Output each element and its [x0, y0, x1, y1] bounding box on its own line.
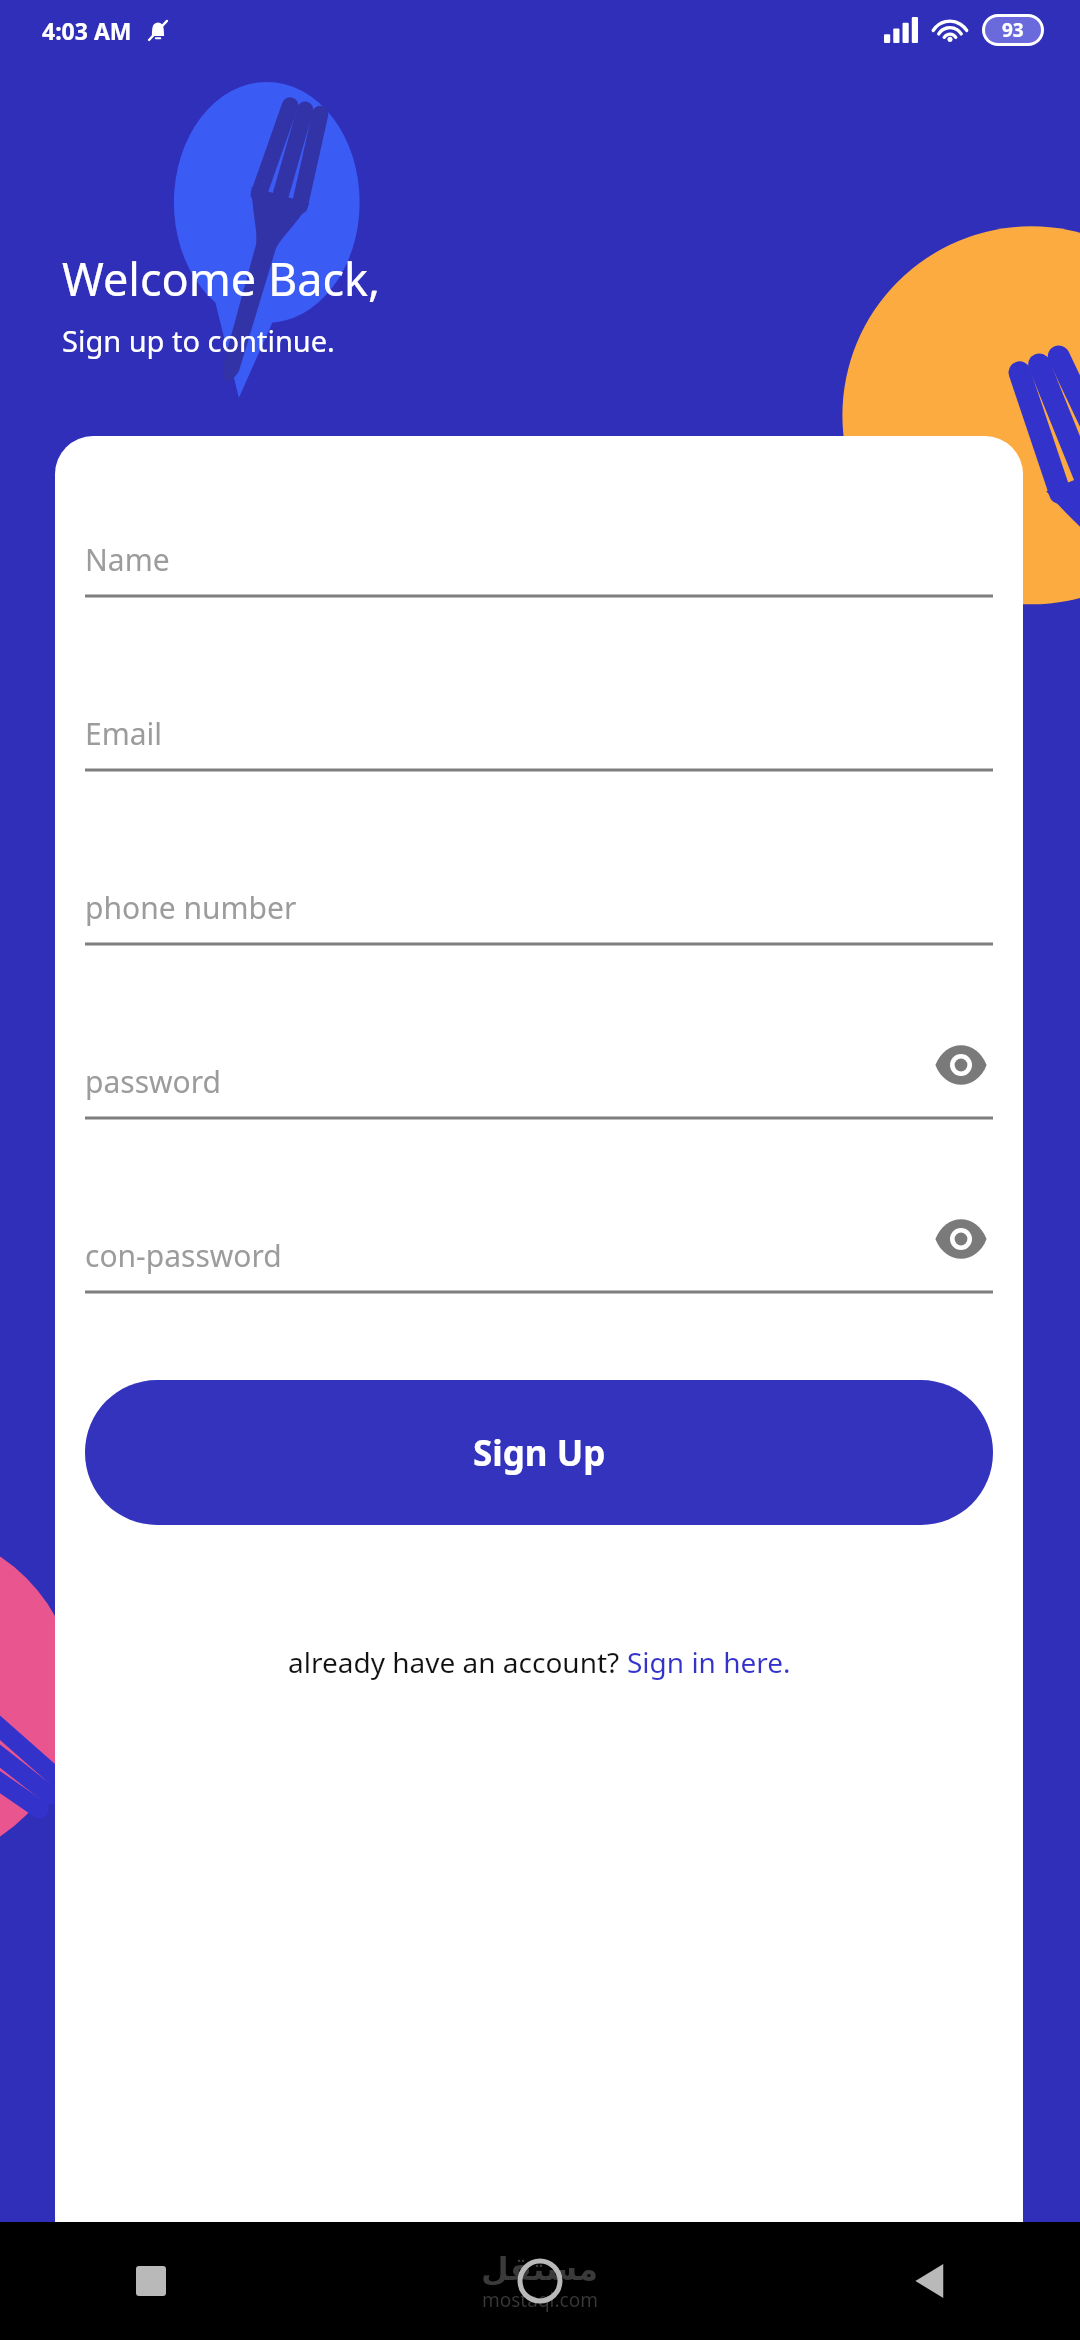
staticText: con-password [85, 1235, 282, 1276]
staticText: Welcome Back, [62, 248, 381, 309]
staticText: Name [85, 539, 170, 580]
staticText: password [85, 1061, 221, 1102]
staticText: 4:03 AM [42, 15, 132, 46]
button[interactable]: password [85, 1023, 993, 1120]
button[interactable]: con-password [85, 1197, 993, 1294]
button[interactable]: phone number [85, 849, 993, 946]
staticText: 93 [1002, 17, 1024, 43]
button[interactable]: Back [890, 2242, 968, 2320]
staticText: Sign Up [473, 1429, 606, 1477]
button[interactable]: Sign Up [85, 1380, 993, 1525]
staticText: phone number [85, 887, 297, 928]
staticText: Email [85, 713, 163, 754]
staticText: mostaql.com [482, 2287, 598, 2313]
button[interactable]: Home [497, 2238, 583, 2324]
button[interactable]: Recent apps [112, 2242, 190, 2320]
button[interactable]: Name [85, 501, 993, 598]
button[interactable]: Show password [929, 1207, 993, 1271]
staticText: already have an account? [288, 1643, 627, 1681]
staticText: Sign in here. [627, 1643, 791, 1681]
button[interactable]: Sign in here. [627, 1643, 791, 1681]
staticText: Sign up to continue. [62, 321, 335, 360]
button[interactable]: Show password [929, 1033, 993, 1097]
button[interactable]: Email [85, 675, 993, 772]
staticText: مستقل [481, 2250, 599, 2287]
